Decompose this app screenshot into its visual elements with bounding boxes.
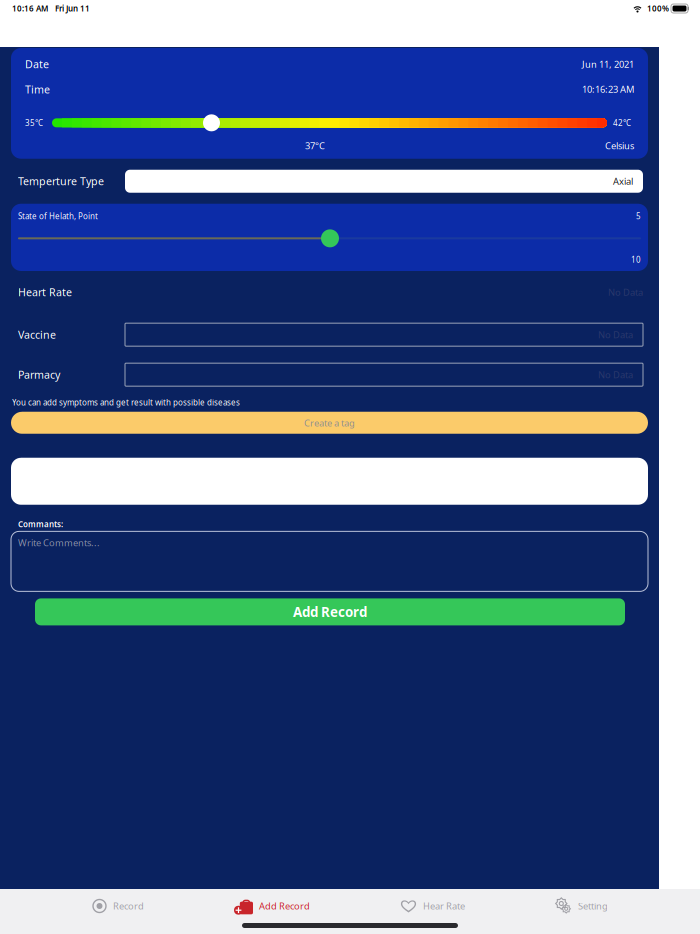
staticText: Date <box>25 57 49 71</box>
staticText: Jun 11, 2021 <box>582 58 634 70</box>
button[interactable]: Add Record <box>0 598 659 625</box>
staticText: 37°C <box>305 139 325 152</box>
button[interactable]: Add Record <box>234 891 310 921</box>
staticText: You can add symptoms and get result with… <box>12 397 240 408</box>
staticText: Temperture Type <box>18 174 104 188</box>
staticText: Celsius <box>605 139 634 152</box>
staticText: Parmacy <box>18 368 60 382</box>
button[interactable]: Setting <box>555 891 608 921</box>
button[interactable]: Hear Rate <box>400 891 465 921</box>
staticText: Commants: <box>18 519 63 529</box>
staticText: 42°C <box>613 117 631 128</box>
button[interactable]: Create a tag <box>0 412 659 434</box>
staticText: No Data <box>608 286 643 298</box>
staticText: Axial <box>613 175 633 187</box>
staticText: Setting <box>578 900 608 912</box>
staticText: 10:16 AM <box>12 3 48 14</box>
staticText: 5 <box>636 211 641 221</box>
staticText: Hear Rate <box>423 900 465 912</box>
staticText: Time <box>25 82 50 96</box>
button[interactable]: No Data <box>125 323 643 346</box>
staticText: Add Record <box>259 900 310 912</box>
staticText: Write Comments... <box>18 536 100 549</box>
staticText: State of Helath, Point <box>18 211 98 221</box>
staticText: Fri Jun 11 <box>55 3 90 14</box>
button[interactable]: Axial <box>125 170 643 193</box>
staticText: Add Record <box>293 603 367 621</box>
button[interactable]: Record <box>92 891 144 921</box>
staticText: Heart Rate <box>18 285 72 299</box>
staticText: No Data <box>598 328 633 341</box>
staticText: Create a tag <box>304 417 355 429</box>
button[interactable]: No Data <box>125 363 643 386</box>
staticText: Vaccine <box>18 328 56 342</box>
staticText: 100% <box>647 3 669 14</box>
staticText: No Data <box>598 368 633 381</box>
staticText: 10:16:23 AM <box>582 83 634 95</box>
staticText: Record <box>113 900 144 912</box>
staticText: 10 <box>631 254 641 265</box>
staticText: 35°C <box>25 117 43 128</box>
